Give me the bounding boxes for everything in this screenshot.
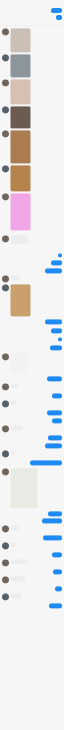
button[interactable]: Photo attachment	[10, 130, 30, 163]
button[interactable]: Sent message	[51, 260, 62, 265]
button[interactable]: Contact avatar	[2, 106, 9, 113]
button[interactable]: Sent message	[50, 345, 62, 350]
button[interactable]: Sent message	[45, 319, 62, 324]
button[interactable]: Sent message	[53, 569, 62, 574]
button[interactable]: Contact avatar	[2, 450, 9, 457]
button[interactable]: Contact avatar	[2, 576, 9, 583]
button[interactable]: Sent message	[45, 443, 62, 448]
button[interactable]: Sent message	[51, 328, 62, 333]
button[interactable]: Contact avatar	[2, 284, 9, 291]
button[interactable]: Received message	[10, 450, 15, 455]
button[interactable]: Sent message	[47, 410, 62, 415]
button[interactable]: Contact avatar	[2, 559, 9, 566]
button[interactable]: Sent message	[30, 460, 62, 465]
button[interactable]: Sent message	[42, 518, 62, 523]
button[interactable]: Contact avatar	[2, 193, 9, 200]
button[interactable]: Contact avatar	[2, 54, 9, 61]
button[interactable]: Contact avatar	[2, 130, 9, 137]
button[interactable]: Photo attachment	[10, 106, 30, 128]
button[interactable]: Contact avatar	[2, 593, 9, 600]
button[interactable]: Contact avatar	[2, 79, 9, 86]
button[interactable]: Contact avatar	[2, 525, 9, 532]
button[interactable]: Photo attachment	[10, 193, 30, 230]
button[interactable]: Contact avatar	[2, 275, 9, 282]
button[interactable]: Contact avatar	[2, 165, 9, 172]
button[interactable]: Received message	[10, 525, 19, 530]
button[interactable]: Sent message	[58, 253, 62, 257]
button[interactable]: Sent message	[47, 376, 62, 381]
button[interactable]: Sent message	[52, 552, 62, 557]
button[interactable]: Sent message	[58, 337, 62, 341]
button[interactable]: Contact avatar	[2, 425, 9, 432]
button[interactable]: Sent message	[43, 535, 62, 540]
button[interactable]: Contact avatar	[2, 28, 9, 35]
button[interactable]: Photo attachment	[10, 79, 30, 104]
button[interactable]: Contact avatar	[2, 383, 9, 390]
button[interactable]: Contact avatar	[2, 542, 9, 549]
button[interactable]: Received message	[10, 542, 15, 547]
button[interactable]: Photo attachment	[10, 165, 30, 191]
button[interactable]: Contact avatar	[2, 468, 9, 475]
button[interactable]: Photo attachment	[10, 28, 30, 52]
button[interactable]: Sent message	[51, 8, 62, 13]
button[interactable]: Sent message	[52, 393, 62, 398]
button[interactable]: Contact avatar	[2, 353, 9, 360]
button[interactable]: Sent message	[52, 418, 62, 423]
button[interactable]: Photo attachment	[10, 284, 30, 316]
button[interactable]: Photo attachment	[10, 54, 30, 77]
button[interactable]: Contact avatar	[2, 400, 9, 407]
button[interactable]: Sent message	[56, 15, 62, 20]
button[interactable]: Received message	[10, 400, 16, 405]
button[interactable]: Sent message	[48, 511, 62, 516]
button[interactable]: Contact avatar	[2, 235, 9, 242]
button[interactable]: Sent message	[49, 603, 62, 608]
button[interactable]: Sent message	[45, 268, 62, 273]
button[interactable]: Sent message	[55, 586, 62, 591]
button[interactable]: Sent message	[48, 435, 62, 440]
